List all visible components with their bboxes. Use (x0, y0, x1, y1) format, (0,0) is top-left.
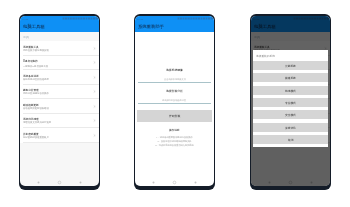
button[interactable]: 硬盘分区管理 (251, 85, 330, 99)
staticText: 自动检测并更新设备驱动 (23, 107, 49, 110)
button[interactable]: 开始安装 (137, 110, 212, 122)
staticText: 操作说明 (169, 128, 180, 131)
button[interactable]: 纯净模式 (253, 86, 328, 95)
staticText: 系统优化清理 (254, 117, 270, 120)
button[interactable]: U盘启动制作 (251, 56, 330, 70)
button[interactable]: 驱动检测更新 (20, 99, 99, 114)
button[interactable]: Recents (78, 180, 83, 185)
staticText: 系统备份还原 (23, 74, 39, 77)
staticText: 硬盘分区管理 (23, 88, 39, 91)
button[interactable]: 系统优化清理 (251, 114, 330, 128)
staticText: 清理垃圾文件提升运行速度 (23, 121, 52, 124)
staticText: 选择安装分区 (166, 89, 183, 93)
staticText: 16:30 (253, 17, 260, 20)
button[interactable]: 系统重装工具 (20, 41, 99, 56)
staticText: 忘记密码时快速重置账户 (23, 136, 49, 139)
staticText: 开始安装 (169, 114, 181, 118)
staticText: 取消 (288, 138, 294, 141)
button[interactable]: 系统优化清理 (20, 114, 99, 128)
staticText: 电脑工具箱 (254, 24, 276, 29)
staticText: 支持在线下载与离线安装 (254, 49, 280, 52)
staticText: 安全模式 (285, 113, 296, 116)
staticText: 备份系统分区并快速还原 (23, 78, 49, 81)
staticText: 电脑工具箱 (23, 24, 45, 29)
staticText: 系统优化清理 (23, 117, 39, 120)
staticText: 开机密码重置 (23, 132, 39, 135)
button[interactable]: 深度优化 (253, 123, 328, 132)
staticText: 16:30 (22, 17, 29, 20)
staticText: 纯净模式 (285, 89, 296, 92)
staticText: 工具 (23, 35, 29, 39)
button[interactable]: 开机密码重置 (251, 128, 330, 143)
staticText: 专业模式 (285, 101, 296, 104)
staticText: 系统重装工具 (254, 45, 270, 48)
button[interactable]: 系统备份还原 (251, 70, 330, 85)
staticText: 一键制作U盘启动盘工具 (23, 64, 49, 67)
button[interactable]: Home (57, 180, 62, 185)
button[interactable]: 系统重装工具 (251, 41, 330, 56)
staticText: 1、请先备份重要数据再进行安装操作 2、安装过程中请勿断电或强制关机 3、完成后… (155, 136, 194, 147)
staticText: 请选择目标安装磁盘分区 (162, 99, 187, 102)
staticText: 选择重装的系统 (256, 54, 275, 57)
staticText: 支持在线下载与离线安装 (23, 49, 49, 52)
staticText: 极速系统 (285, 76, 296, 79)
button[interactable]: 取消 (253, 135, 328, 144)
staticText: 云萌系统 (285, 64, 296, 67)
button[interactable]: 开机密码重置 (20, 128, 99, 143)
button[interactable]: 系统备份还原 (20, 70, 99, 85)
staticText: 系统重装工具 (23, 45, 39, 48)
staticText: U盘启动制作 (254, 59, 269, 63)
button[interactable]: U盘启动制作 (20, 56, 99, 70)
staticText: 深度优化 (285, 126, 296, 129)
staticText: 工具 (254, 35, 260, 39)
button[interactable]: Back (267, 180, 272, 185)
button[interactable]: Recents (193, 180, 198, 185)
button[interactable]: 硬盘分区管理 (20, 85, 99, 99)
button[interactable]: Home (288, 180, 293, 185)
button[interactable]: 专业模式 (253, 98, 328, 107)
button[interactable]: 云萌系统 (253, 61, 328, 70)
staticText: 选择系统镜像 (166, 68, 183, 72)
button[interactable]: Back (36, 180, 41, 185)
button[interactable]: 安全模式 (253, 110, 328, 119)
staticText: 系统重装助手 (138, 24, 164, 29)
staticText: U盘启动制作 (23, 59, 38, 63)
staticText: 支持分区创建与合并操作 (23, 92, 49, 95)
button[interactable]: 极速系统 (253, 73, 328, 82)
staticText: 清理垃圾文件提升运行速度 (254, 121, 283, 124)
button[interactable]: Recents (309, 180, 314, 185)
button[interactable]: Back (151, 180, 156, 185)
button[interactable]: 驱动检测更新 (251, 99, 330, 114)
staticText: 16:30 (137, 17, 144, 20)
staticText: 驱动检测更新 (23, 103, 39, 106)
button[interactable]: Home (172, 180, 177, 185)
staticText: 点击选择本地镜像文件 (164, 78, 186, 81)
